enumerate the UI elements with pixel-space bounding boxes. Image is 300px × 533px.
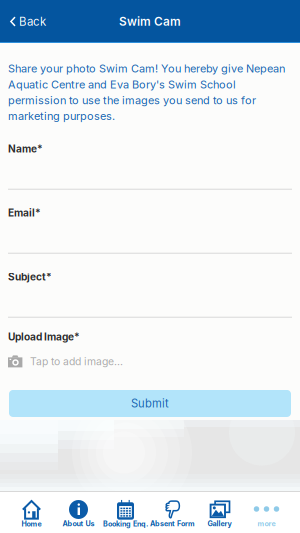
staticText: Tap to add image... [30,355,123,368]
staticText: Swim Cam [119,14,181,29]
staticText: Share your photo Swim Cam! You hereby gi… [8,62,285,123]
staticText: Subject* [8,271,52,283]
button[interactable]: About Us [55,491,102,533]
staticText: Upload Image* [8,331,80,343]
staticText: more [257,519,275,528]
button[interactable]: Booking Enq. [102,491,149,533]
button[interactable]: Submit [9,390,291,417]
button[interactable]: Back [0,7,54,36]
staticText: Email* [8,207,41,219]
button[interactable]: more [243,491,290,533]
staticText: About Us [62,519,94,528]
staticText: Back [19,15,46,28]
staticText: Submit [131,397,169,410]
button[interactable]: Tap to add image... [0,343,300,370]
button[interactable]: Absent Form [149,491,196,533]
staticText: Name* [8,143,43,155]
staticText: Home [21,520,41,528]
button[interactable]: Gallery [196,491,243,533]
staticText: Gallery [207,519,231,528]
staticText: Booking Enq. [103,520,148,528]
staticText: Absent Form [150,519,195,528]
button[interactable]: Home [8,491,55,533]
